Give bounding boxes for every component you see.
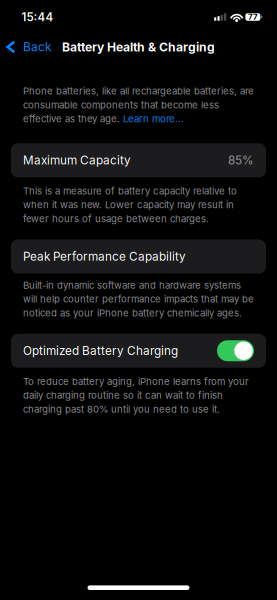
staticText: This is a measure of battery capacity re…	[23, 185, 237, 224]
button[interactable]: Optimized Battery Charging	[11, 334, 266, 368]
staticText: Optimized Battery Charging	[23, 344, 178, 358]
staticText: Back	[23, 40, 52, 54]
staticText: Maximum Capacity	[23, 153, 131, 167]
staticText: 77	[248, 12, 258, 22]
button[interactable]: Maximum Capacity	[11, 143, 266, 177]
button[interactable]: Back	[0, 35, 58, 59]
staticText: 85%	[228, 153, 254, 167]
staticText: Peak Performance Capability	[23, 249, 186, 264]
staticText: Built-in dynamic software and hardware s…	[23, 279, 254, 319]
button[interactable]: Peak Performance Capability	[11, 239, 266, 273]
staticText: Battery Health & Charging	[62, 40, 215, 54]
staticText: To reduce battery aging, iPhone learns f…	[23, 376, 249, 415]
staticText: 15:44	[21, 10, 53, 24]
staticText: Phone batteries, like all rechargeable b…	[23, 85, 254, 124]
